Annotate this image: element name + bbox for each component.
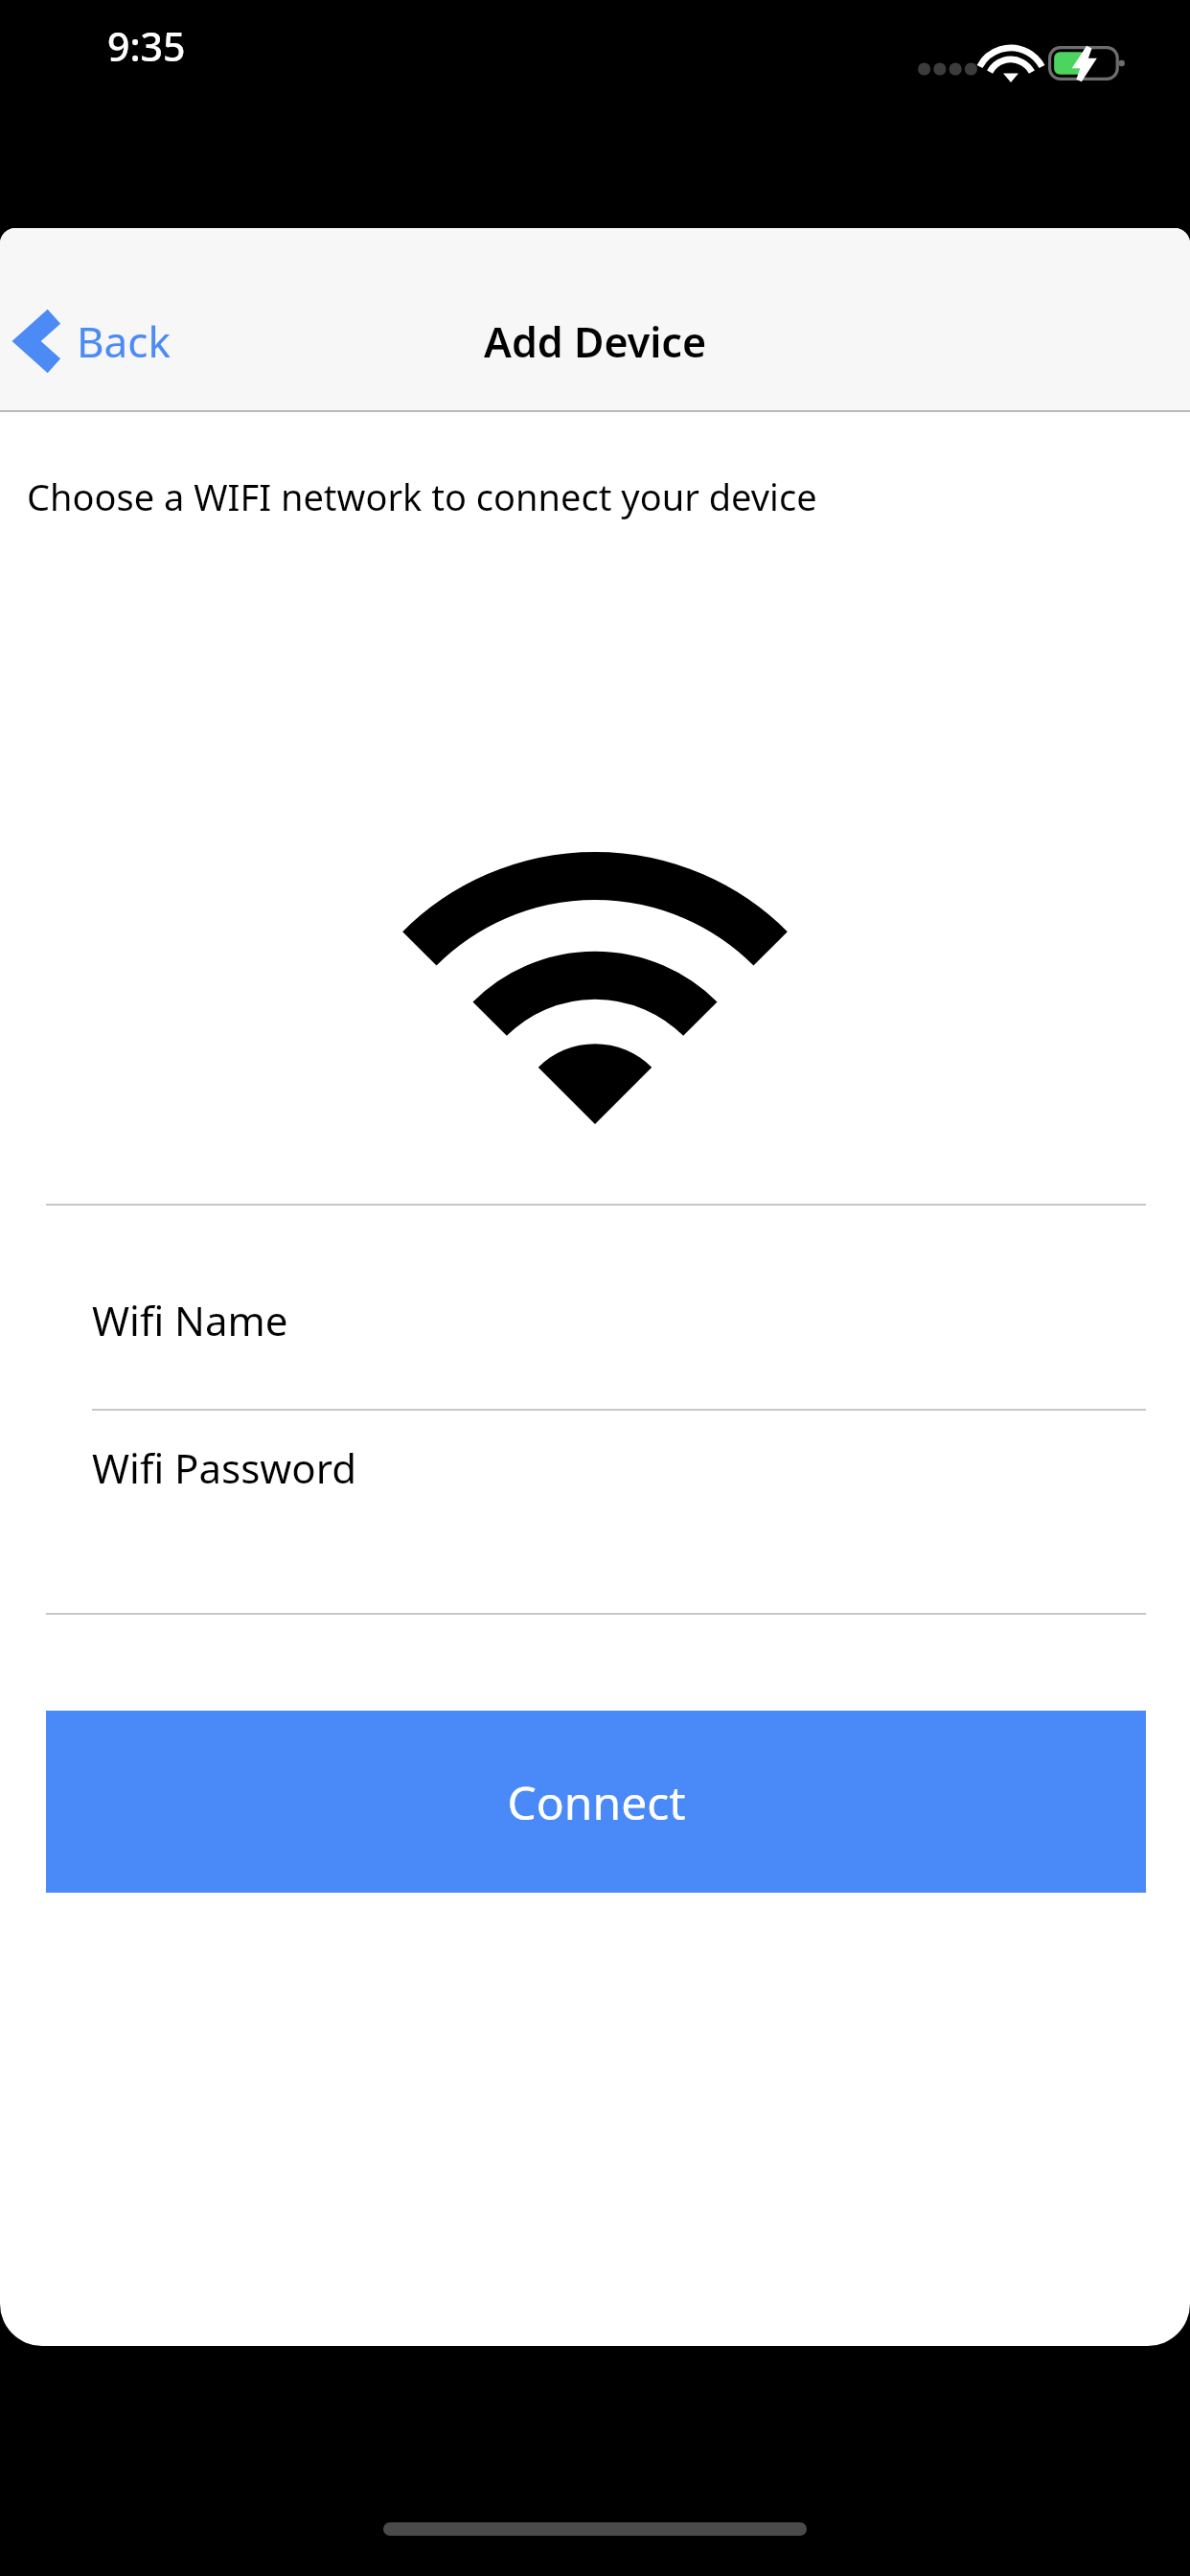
staticText: Wifi Name <box>92 1293 288 1347</box>
staticText: Connect <box>507 1771 686 1833</box>
staticText: Back <box>77 312 171 370</box>
other: Home indicator <box>383 2522 807 2536</box>
staticText: Choose a WIFI network to connect your de… <box>27 471 817 521</box>
button[interactable]: Wifi Password <box>0 1423 1190 1615</box>
staticText: 9:35 <box>107 19 186 73</box>
button[interactable]: Wifi Name <box>0 1255 1190 1411</box>
button[interactable]: Back <box>0 293 194 389</box>
staticText: Add Device <box>484 313 707 370</box>
button[interactable]: Connect <box>46 1711 1146 1893</box>
staticText: Wifi Password <box>92 1440 357 1495</box>
